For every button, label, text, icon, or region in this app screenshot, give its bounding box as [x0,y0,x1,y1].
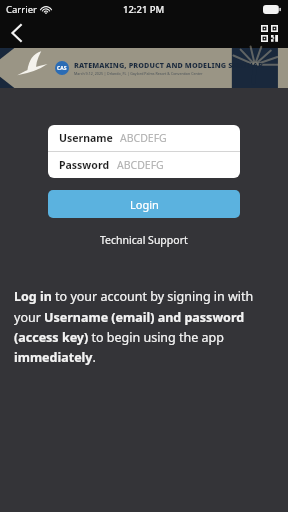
staticText: Username [59,131,113,145]
staticText: March 9-12, 2025 | Orlando, FL | Gaylord… [74,71,203,76]
staticText: RATEMAKING, PRODUCT AND MODELING SEMINAR [74,60,264,70]
button[interactable]: Login [48,190,240,218]
staticText: Password [59,158,110,172]
button[interactable]: Scan QR code [256,20,282,46]
staticText: CAS [57,65,67,72]
button[interactable]: Password [48,152,240,178]
staticText: ABCDEFG [117,158,164,172]
staticText: ABCDEFG [120,131,167,145]
button[interactable]: Technical Support [90,230,198,250]
staticText: Log in to your account by signing in wit… [14,288,266,365]
staticText: Technical Support [100,233,188,247]
staticText: Login [130,197,159,212]
staticText: 12:21 PM [123,3,165,16]
button[interactable]: Back [0,18,34,48]
staticText: Carrier [6,3,37,16]
button[interactable]: Advertisement: Ratemaking, Product and M… [0,48,288,88]
button[interactable]: Username [48,125,240,151]
